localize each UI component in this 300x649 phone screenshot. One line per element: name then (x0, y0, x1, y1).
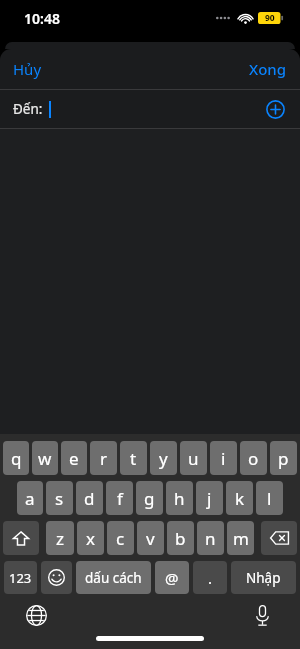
staticText: p (278, 447, 289, 470)
button[interactable]: c (107, 521, 134, 555)
staticText: k (235, 487, 245, 510)
staticText: @ (165, 568, 179, 588)
staticText: j (207, 487, 212, 510)
button[interactable]: Backspace (261, 521, 297, 555)
button[interactable]: 123 (4, 561, 37, 594)
staticText: 90 (265, 12, 275, 24)
staticText: c (116, 527, 125, 550)
button[interactable]: j (196, 481, 223, 515)
button[interactable]: k (226, 481, 253, 515)
staticText: u (188, 447, 199, 470)
button[interactable]: Hủy (0, 59, 50, 79)
button[interactable]: r (90, 441, 117, 475)
button[interactable]: t (120, 441, 147, 475)
staticText: d (84, 487, 95, 510)
staticText: 10:48 (24, 9, 60, 28)
button[interactable]: z (46, 521, 74, 555)
button[interactable]: x (77, 521, 104, 555)
staticText: a (25, 487, 35, 510)
staticText: n (205, 527, 216, 550)
button[interactable]: v (137, 521, 164, 555)
staticText: l (267, 487, 272, 510)
staticText: i (221, 447, 226, 470)
button[interactable]: d (76, 481, 103, 515)
button[interactable]: l (256, 481, 283, 515)
staticText: Nhập (246, 569, 281, 587)
staticText: dấu cách (85, 569, 142, 587)
button[interactable]: m (227, 521, 254, 555)
button[interactable]: Change keyboard (22, 601, 50, 629)
staticText: . (208, 568, 213, 588)
staticText: b (175, 527, 186, 550)
staticText: Đến: (13, 100, 43, 118)
button[interactable]: u (180, 441, 207, 475)
staticText: h (174, 487, 185, 510)
button[interactable]: q (3, 441, 29, 475)
staticText: z (56, 527, 64, 550)
button[interactable]: a (17, 481, 43, 515)
staticText: e (69, 447, 79, 470)
staticText: s (55, 487, 64, 510)
button[interactable]: n (197, 521, 224, 555)
button[interactable]: i (210, 441, 237, 475)
staticText: r (100, 447, 108, 470)
button[interactable]: Shift (3, 521, 39, 555)
button[interactable]: p (270, 441, 297, 475)
staticText: o (248, 447, 259, 470)
staticText: q (11, 447, 22, 470)
button[interactable]: Emoji (41, 561, 72, 594)
button[interactable]: Nhập (231, 561, 296, 594)
button[interactable]: w (32, 441, 58, 475)
button[interactable]: f (106, 481, 133, 515)
staticText: x (86, 527, 95, 550)
button[interactable]: g (136, 481, 163, 515)
staticText: y (159, 447, 168, 470)
button[interactable]: Dictation (248, 601, 276, 629)
button[interactable]: h (166, 481, 193, 515)
button[interactable]: . (193, 561, 227, 594)
button[interactable]: o (240, 441, 267, 475)
button[interactable]: s (46, 481, 73, 515)
button[interactable]: e (61, 441, 87, 475)
staticText: v (146, 527, 155, 550)
staticText: f (117, 487, 123, 510)
button[interactable]: y (150, 441, 177, 475)
staticText: 123 (9, 569, 32, 587)
staticText: t (130, 447, 137, 470)
button[interactable]: Xong (241, 59, 300, 79)
button[interactable]: dấu cách (76, 561, 151, 594)
button[interactable]: b (167, 521, 194, 555)
staticText: g (144, 487, 155, 510)
staticText: m (233, 527, 249, 550)
staticText: w (38, 447, 52, 470)
button[interactable]: Add contact (262, 96, 288, 122)
button[interactable]: @ (155, 561, 189, 594)
